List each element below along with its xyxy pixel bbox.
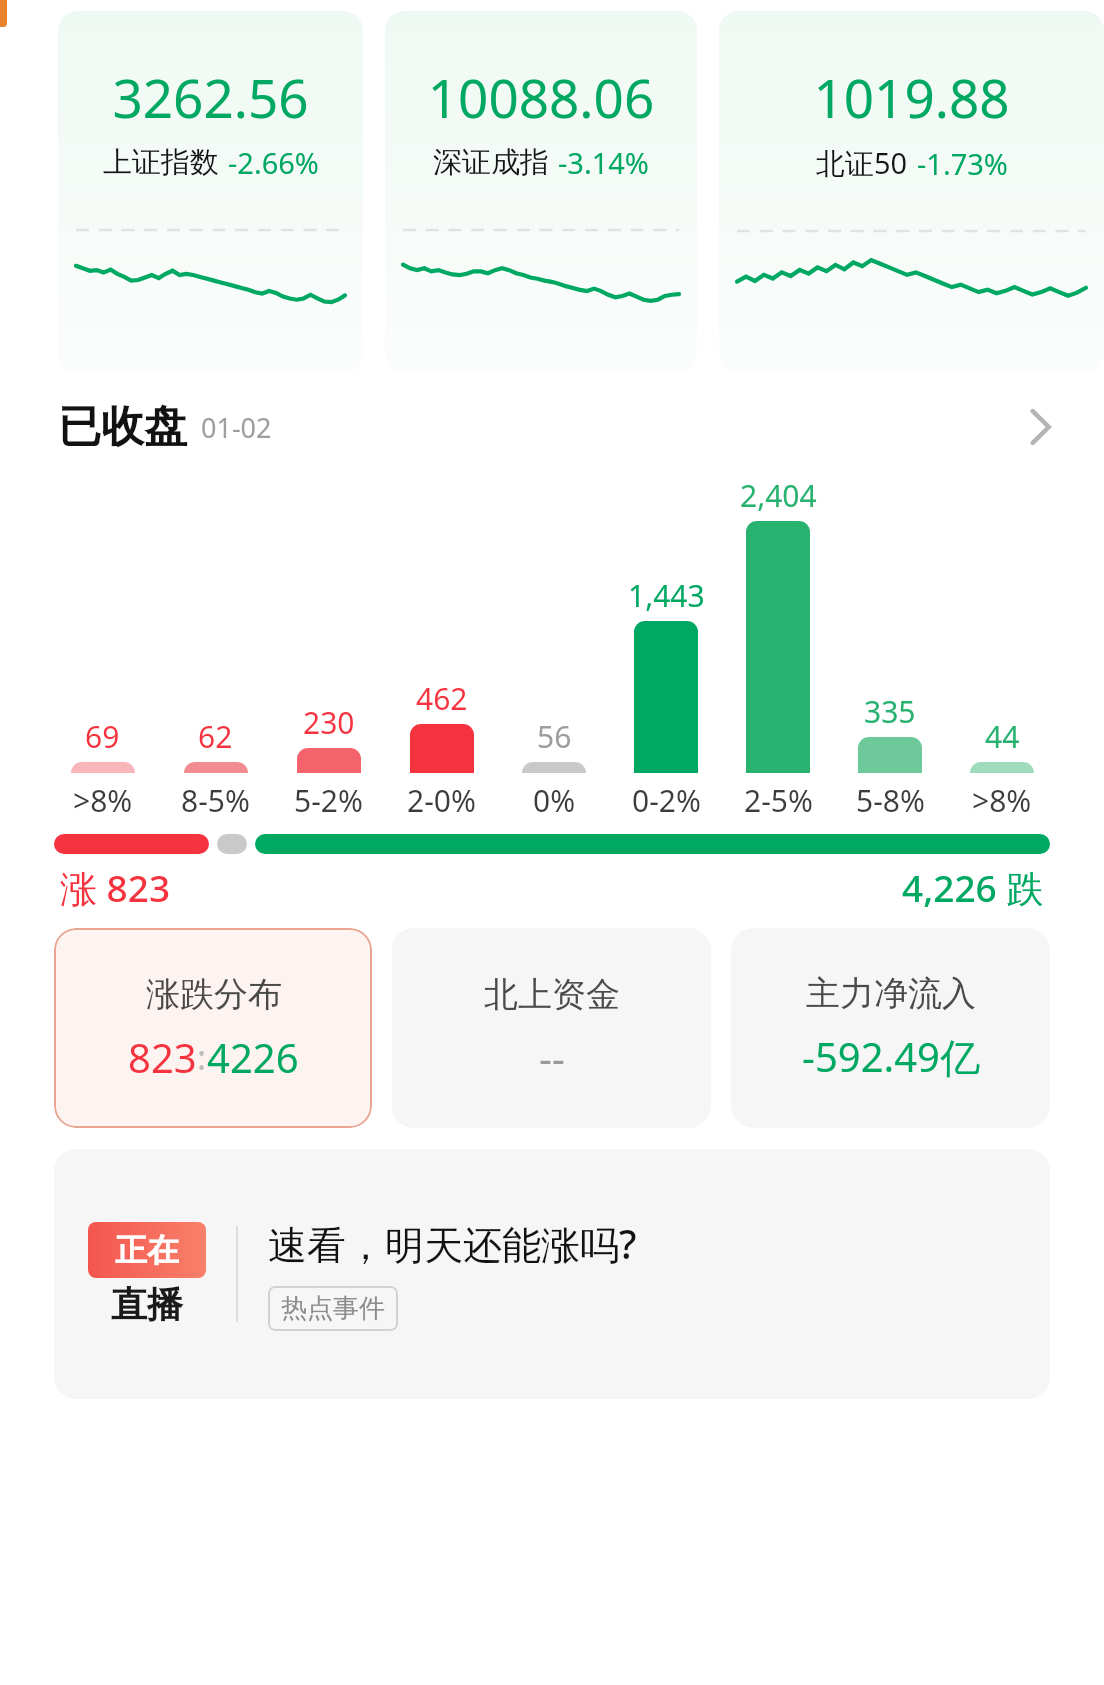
staticText: 0-2% bbox=[632, 780, 701, 821]
staticText: 335 bbox=[864, 691, 916, 732]
staticText: 4,226 跌 bbox=[902, 862, 1044, 913]
staticText: 速看，明天还能涨吗? bbox=[268, 1217, 637, 1270]
staticText: >8% bbox=[73, 780, 133, 821]
staticText: 上证指数 bbox=[103, 144, 219, 181]
staticText: 2,404 bbox=[740, 475, 817, 516]
staticText: 4226 bbox=[207, 1030, 299, 1084]
button[interactable]: 3262.56 bbox=[58, 11, 363, 373]
staticText: 正在 bbox=[115, 1230, 179, 1270]
button[interactable]: 正在 bbox=[54, 1149, 1050, 1399]
staticText: >8% bbox=[972, 780, 1032, 821]
staticText: 230 bbox=[303, 702, 355, 743]
staticText: -- bbox=[539, 1030, 565, 1084]
staticText: -3.14% bbox=[558, 143, 649, 182]
staticText: 涨 823 bbox=[60, 862, 171, 913]
button[interactable]: 1019.88 bbox=[719, 11, 1104, 373]
staticText: 5-8% bbox=[856, 780, 925, 821]
staticText: 0% bbox=[533, 780, 576, 821]
button[interactable]: 北上资金 bbox=[392, 928, 711, 1128]
staticText: 44 bbox=[985, 716, 1020, 757]
staticText: 01-02 bbox=[201, 409, 272, 446]
staticText: : bbox=[197, 1034, 207, 1080]
staticText: 10088.06 bbox=[385, 61, 697, 133]
staticText: 2-0% bbox=[407, 780, 476, 821]
staticText: 62 bbox=[198, 716, 233, 757]
button[interactable]: 主力净流入 bbox=[731, 928, 1050, 1128]
staticText: 5-2% bbox=[294, 780, 363, 821]
staticText: 已收盘 bbox=[58, 400, 187, 454]
staticText: 1,443 bbox=[628, 575, 705, 616]
staticText: 2-5% bbox=[744, 780, 813, 821]
staticText: 深证成指 bbox=[433, 144, 549, 181]
button[interactable]: 已收盘 bbox=[0, 391, 1104, 463]
other: 更多 bbox=[1028, 406, 1054, 448]
staticText: 462 bbox=[416, 678, 468, 719]
staticText: 56 bbox=[537, 716, 572, 757]
staticText: 69 bbox=[85, 716, 120, 757]
staticText: 1019.88 bbox=[719, 61, 1104, 133]
staticText: 3262.56 bbox=[58, 61, 363, 133]
button[interactable] bbox=[54, 834, 1050, 854]
button[interactable]: 10088.06 bbox=[385, 11, 697, 373]
staticText: 直播 bbox=[111, 1282, 183, 1327]
staticText: 主力净流入 bbox=[806, 972, 976, 1015]
staticText: 北证50 bbox=[816, 143, 908, 183]
staticText: 热点事件 bbox=[281, 1292, 385, 1325]
staticText: -592.49亿 bbox=[802, 1029, 980, 1084]
button[interactable]: 涨跌分布 bbox=[54, 928, 372, 1128]
staticText: 8-5% bbox=[181, 780, 250, 821]
staticText: 北上资金 bbox=[484, 973, 620, 1016]
staticText: 涨跌分布 bbox=[146, 973, 282, 1016]
staticText: -1.73% bbox=[917, 144, 1008, 183]
staticText: 823 bbox=[128, 1030, 197, 1084]
staticText: -2.66% bbox=[228, 143, 319, 182]
